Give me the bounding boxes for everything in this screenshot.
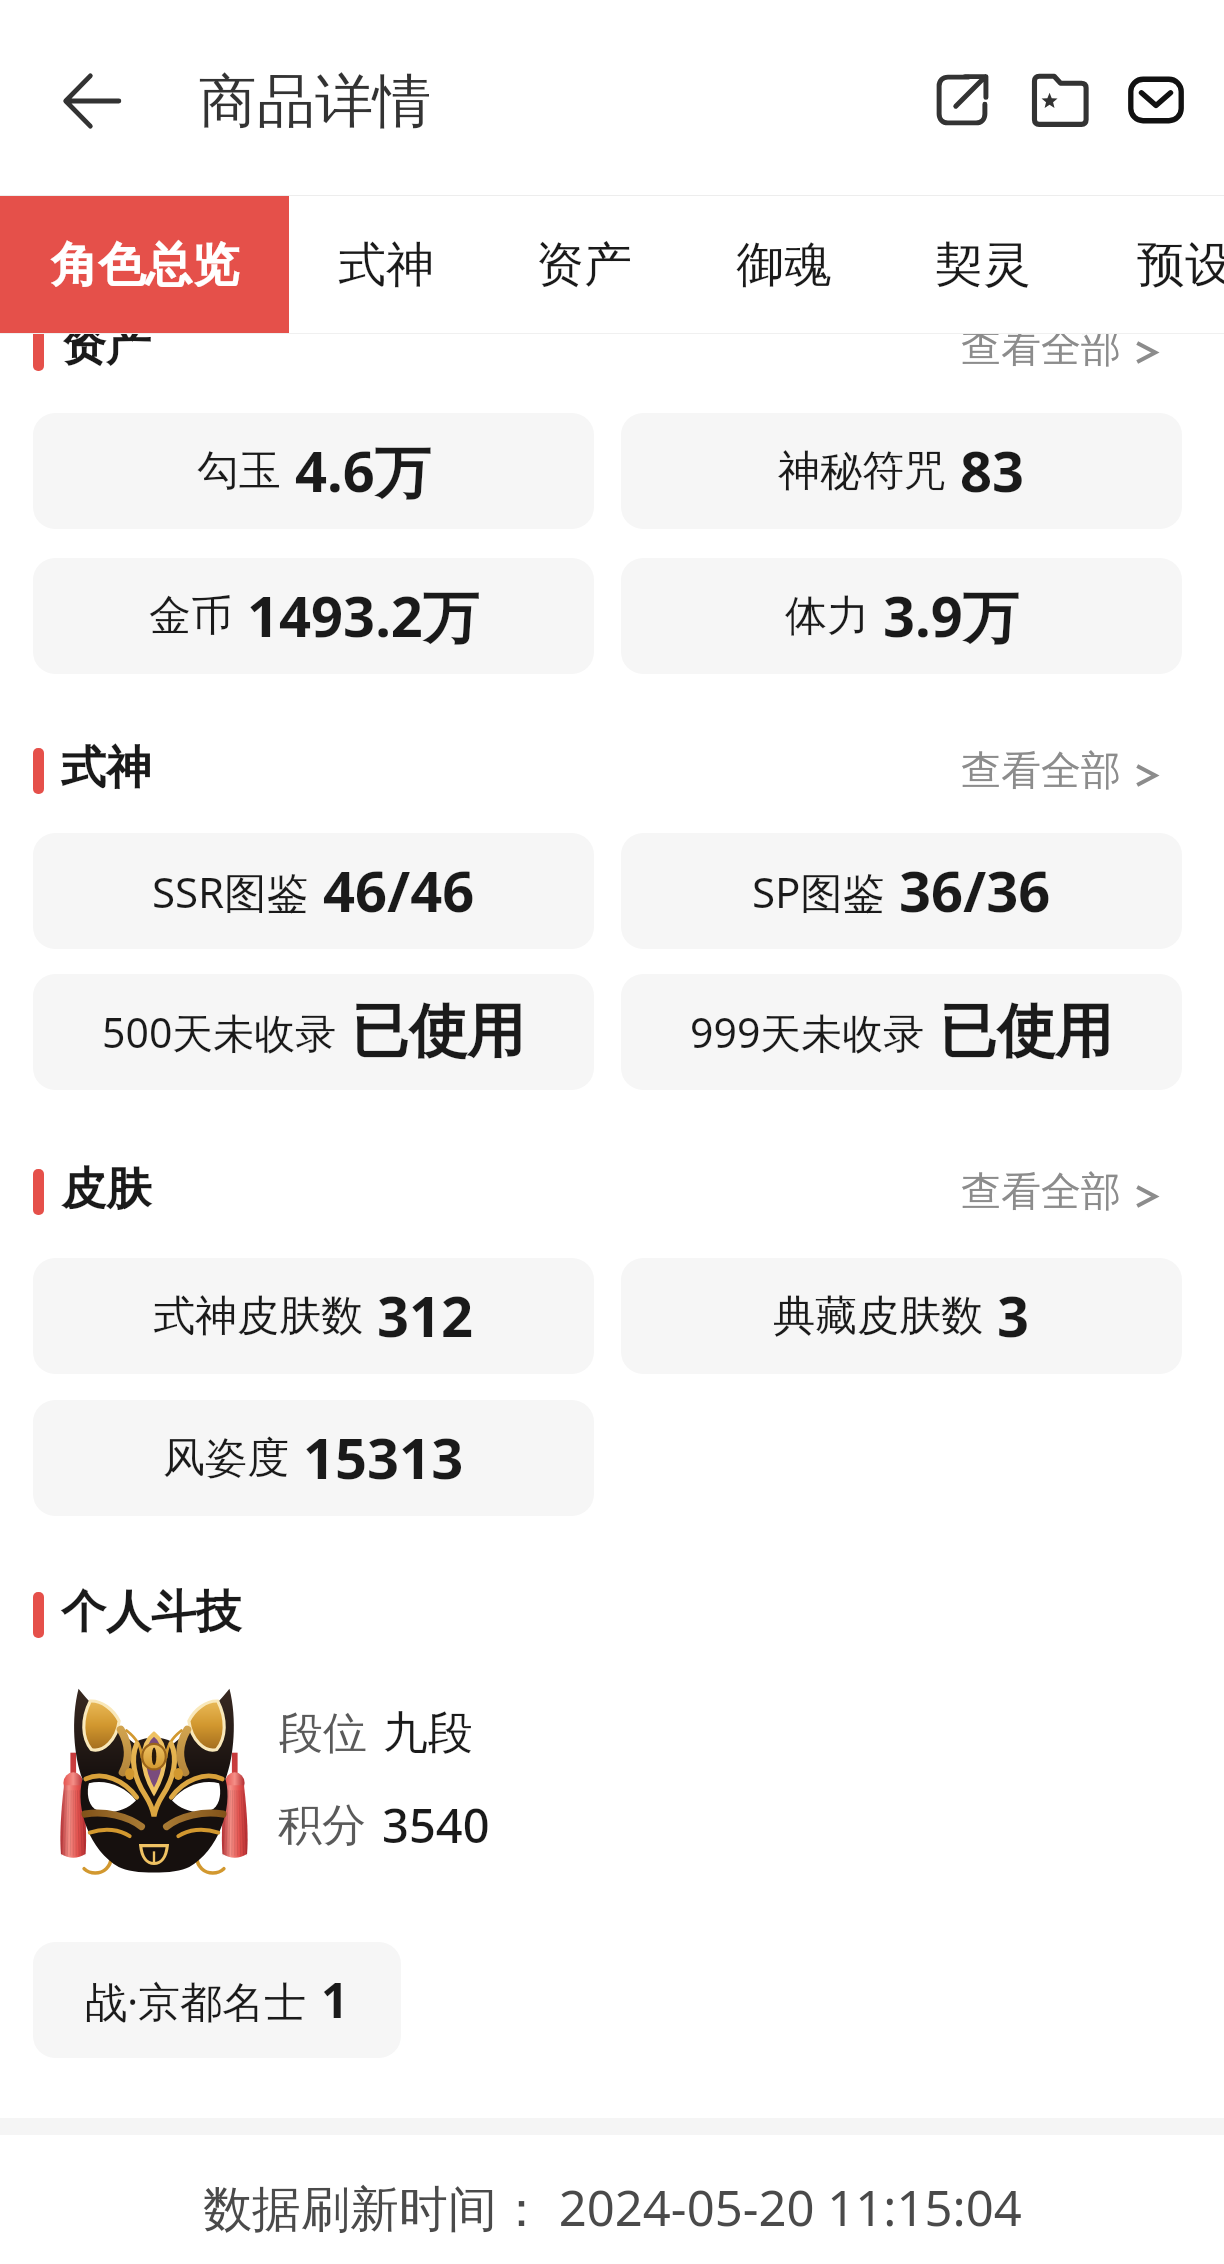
button[interactable]: 式神皮肤数 bbox=[33, 1258, 594, 1374]
staticText: 式神 bbox=[338, 235, 434, 295]
staticText: 83 bbox=[960, 432, 1025, 508]
staticText: 契灵 bbox=[935, 235, 1031, 295]
staticText: 已使用 bbox=[351, 995, 525, 1068]
button[interactable]: 契灵 bbox=[893, 196, 1073, 334]
staticText: 数据刷新时间： 2024-05-20 11:15:04 bbox=[203, 2174, 1022, 2241]
button[interactable]: 角色总览 bbox=[0, 196, 289, 334]
staticText: 积分 bbox=[278, 1798, 366, 1853]
staticText: 九段 bbox=[383, 1705, 473, 1762]
staticText: 角色总览 bbox=[51, 236, 239, 295]
staticText: 36/36 bbox=[899, 852, 1051, 928]
staticText: 典藏皮肤数 bbox=[773, 1290, 983, 1343]
button[interactable]: 查看全部 bbox=[961, 322, 1157, 372]
button[interactable]: 勾玉 bbox=[33, 413, 594, 529]
staticText: 500天未收录 bbox=[102, 1004, 337, 1060]
staticText: 资产 bbox=[61, 317, 151, 374]
staticText: 预设 bbox=[1137, 235, 1224, 295]
staticText: 段位 bbox=[279, 1706, 367, 1761]
staticText: 体力 bbox=[785, 590, 869, 643]
staticText: 查看全部 bbox=[961, 322, 1121, 372]
button[interactable]: 资产 bbox=[494, 196, 674, 334]
button[interactable]: 神秘符咒 bbox=[621, 413, 1182, 529]
button[interactable]: 御魂 bbox=[694, 196, 874, 334]
button[interactable]: 金币 bbox=[33, 558, 594, 674]
button[interactable]: Back bbox=[44, 53, 140, 149]
staticText: 查看全部 bbox=[961, 1166, 1121, 1216]
staticText: 风姿度 bbox=[163, 1432, 289, 1485]
button[interactable]: 体力 bbox=[621, 558, 1182, 674]
button[interactable]: 战·京都名士 bbox=[33, 1942, 401, 2058]
button[interactable]: Messages bbox=[1108, 52, 1204, 148]
staticText: 皮肤 bbox=[61, 1161, 151, 1218]
staticText: 46/46 bbox=[323, 852, 475, 928]
button[interactable]: SSR图鉴 bbox=[33, 833, 594, 949]
button[interactable]: Share bbox=[912, 50, 1011, 149]
staticText: 商品详情 bbox=[199, 65, 431, 138]
button[interactable]: 999天未收录 bbox=[621, 974, 1182, 1090]
staticText: 1 bbox=[321, 1967, 349, 2032]
staticText: 999天未收录 bbox=[690, 1004, 925, 1060]
staticText: 已使用 bbox=[939, 995, 1113, 1068]
button[interactable]: 500天未收录 bbox=[33, 974, 594, 1090]
staticText: 查看全部 bbox=[961, 745, 1121, 795]
button[interactable]: SP图鉴 bbox=[621, 833, 1182, 949]
staticText: 神秘符咒 bbox=[778, 445, 946, 498]
staticText: SP图鉴 bbox=[752, 863, 885, 920]
staticText: 312 bbox=[377, 1277, 474, 1353]
staticText: 式神皮肤数 bbox=[153, 1290, 363, 1343]
staticText: 3 bbox=[997, 1277, 1030, 1353]
staticText: 战·京都名士 bbox=[85, 1972, 307, 2029]
staticText: 4.6万 bbox=[295, 432, 431, 508]
staticText: 资产 bbox=[536, 235, 632, 295]
staticText: 3540 bbox=[382, 1793, 490, 1857]
staticText: 式神 bbox=[61, 740, 151, 797]
staticText: 勾玉 bbox=[197, 445, 281, 498]
button[interactable]: 式神 bbox=[296, 196, 476, 334]
button[interactable]: Collection bbox=[1011, 51, 1108, 148]
staticText: 15313 bbox=[303, 1419, 464, 1495]
button[interactable]: 查看全部 bbox=[961, 745, 1157, 795]
button[interactable]: 风姿度 bbox=[33, 1400, 594, 1516]
staticText: 个人斗技 bbox=[61, 1584, 241, 1641]
button[interactable]: 查看全部 bbox=[961, 1166, 1157, 1216]
staticText: 1493.2万 bbox=[247, 577, 479, 653]
staticText: 御魂 bbox=[736, 235, 832, 295]
button[interactable]: 典藏皮肤数 bbox=[621, 1258, 1182, 1374]
staticText: SSR图鉴 bbox=[152, 863, 309, 920]
button[interactable]: 预设 bbox=[1095, 196, 1224, 334]
staticText: 金币 bbox=[149, 590, 233, 643]
staticText: 3.9万 bbox=[883, 577, 1019, 653]
